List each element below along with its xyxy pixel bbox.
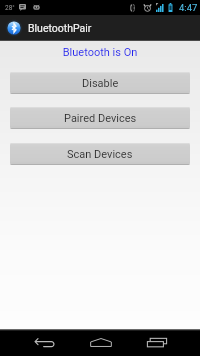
staticText: 4:47 xyxy=(179,2,198,13)
staticText: Disable xyxy=(82,77,119,90)
staticText: 28° xyxy=(5,4,15,12)
button[interactable]: Back xyxy=(30,329,58,356)
button[interactable]: Scan Devices xyxy=(10,143,190,165)
staticText: Scan Devices xyxy=(67,148,133,161)
staticText: Bluetooth is On xyxy=(0,46,200,59)
button[interactable]: Disable xyxy=(10,72,190,94)
staticText: Paired Devices xyxy=(64,112,137,125)
button[interactable]: Home xyxy=(87,329,115,356)
button[interactable]: Recents xyxy=(143,329,171,356)
staticText: BluetoothPair xyxy=(28,22,92,34)
button[interactable]: Paired Devices xyxy=(10,107,190,129)
